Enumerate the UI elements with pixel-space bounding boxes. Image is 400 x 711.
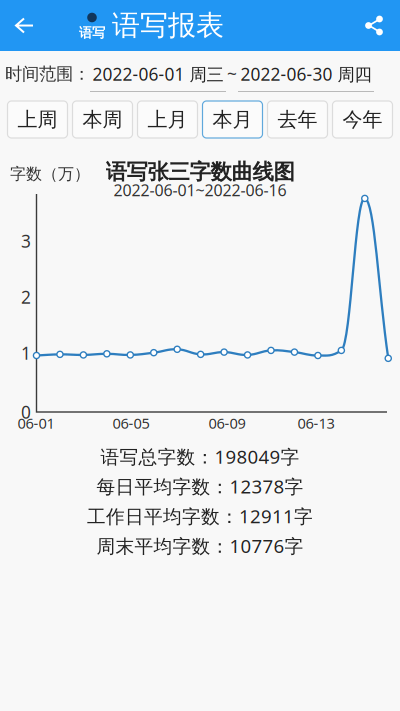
staticText: 时间范围： — [5, 63, 90, 85]
staticText: 2 — [21, 285, 31, 308]
staticText: 3 — [21, 229, 31, 252]
staticText: 语写 — [79, 24, 105, 41]
button[interactable]: 上月 — [137, 101, 197, 138]
button[interactable]: 去年 — [267, 101, 327, 138]
staticText: 语写总字数：198049字 — [100, 444, 299, 469]
staticText: 字数（万） — [10, 164, 90, 184]
staticText: ~ — [227, 62, 237, 85]
button[interactable]: 上周 — [7, 101, 67, 138]
staticText: 06-13 — [297, 413, 334, 433]
button[interactable]: 2022-06-30 周四 — [238, 51, 374, 97]
button[interactable]: 今年 — [332, 101, 392, 138]
staticText: 0 — [21, 400, 31, 423]
staticText: 今年 — [342, 107, 382, 132]
button[interactable]: 本周 — [72, 101, 132, 138]
button[interactable]: Back — [0, 0, 48, 51]
staticText: 周末平均字数：10776字 — [96, 533, 303, 558]
staticText: 本月 — [212, 107, 252, 132]
staticText: 上月 — [147, 107, 187, 132]
staticText: 工作日平均字数：12911字 — [87, 504, 313, 528]
staticText: 语写张三字数曲线图 — [105, 159, 294, 185]
staticText: 06-09 — [208, 413, 245, 433]
staticText: 2022-06-30 周四 — [240, 62, 371, 85]
staticText: 去年 — [277, 107, 317, 132]
staticText: 每日平均字数：12378字 — [96, 474, 303, 499]
button[interactable]: 2022-06-01 周三 — [90, 51, 226, 97]
staticText: 本周 — [82, 107, 122, 132]
staticText: 语写报表 — [112, 8, 224, 43]
staticText: 2022-06-01~2022-06-16 — [113, 179, 286, 201]
staticText: 06-05 — [112, 413, 149, 433]
staticText: 2022-06-01 周三 — [92, 62, 223, 85]
button[interactable]: Share — [348, 0, 400, 51]
staticText: 1 — [21, 341, 31, 364]
button[interactable]: 本月 — [202, 101, 262, 138]
staticText: 上周 — [17, 107, 57, 132]
staticText: 06-01 — [17, 413, 54, 433]
